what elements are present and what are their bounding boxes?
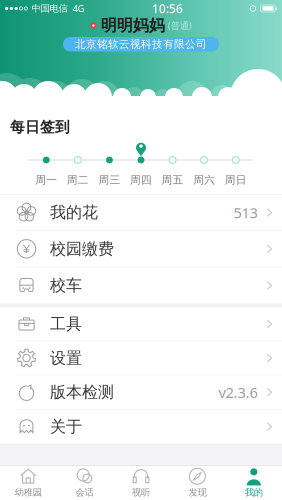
- staticText: 周日: [225, 173, 247, 186]
- button[interactable]: 我的: [226, 466, 282, 500]
- staticText: 周六: [193, 173, 215, 186]
- staticText: 校车: [50, 276, 82, 295]
- staticText: 发现: [188, 487, 206, 498]
- button[interactable]: 会话: [56, 466, 113, 500]
- staticText: 周二: [67, 173, 89, 186]
- button[interactable]: 发现: [169, 466, 226, 500]
- staticText: 北京铭软云视科技有限公司: [75, 38, 207, 51]
- button[interactable]: 我的花: [0, 195, 282, 231]
- staticText: 版本检测: [50, 382, 114, 402]
- staticText: 明明妈妈: [101, 16, 165, 35]
- staticText: 工具: [50, 314, 82, 334]
- staticText: 中国电信: [31, 3, 67, 14]
- staticText: 4G: [72, 2, 84, 15]
- staticText: 校园缴费: [50, 239, 114, 259]
- staticText: 我的: [245, 487, 263, 498]
- staticText: 周五: [162, 173, 184, 186]
- staticText: v2.3.6: [219, 382, 258, 402]
- button[interactable]: 校车: [0, 267, 282, 304]
- staticText: 视听: [132, 487, 150, 498]
- staticText: 周四: [130, 173, 152, 186]
- staticText: 周一: [35, 173, 57, 186]
- staticText: 513: [234, 203, 258, 222]
- button[interactable]: 幼稚园: [0, 466, 56, 500]
- staticText: 会话: [76, 487, 94, 498]
- button[interactable]: 关于: [0, 410, 282, 444]
- staticText: 我的花: [50, 203, 98, 222]
- staticText: 设置: [50, 348, 82, 368]
- staticText: (普通): [168, 19, 192, 32]
- staticText: 10:56: [152, 0, 183, 16]
- button[interactable]: 设置: [0, 341, 282, 375]
- staticText: 周三: [98, 173, 120, 186]
- staticText: 每日签到: [10, 118, 70, 136]
- button[interactable]: 校园缴费: [0, 231, 282, 267]
- staticText: 幼稚园: [15, 487, 42, 498]
- staticText: 关于: [50, 417, 82, 436]
- button[interactable]: 版本检测: [0, 375, 282, 410]
- button[interactable]: 视听: [113, 466, 169, 500]
- button[interactable]: 工具: [0, 307, 282, 341]
